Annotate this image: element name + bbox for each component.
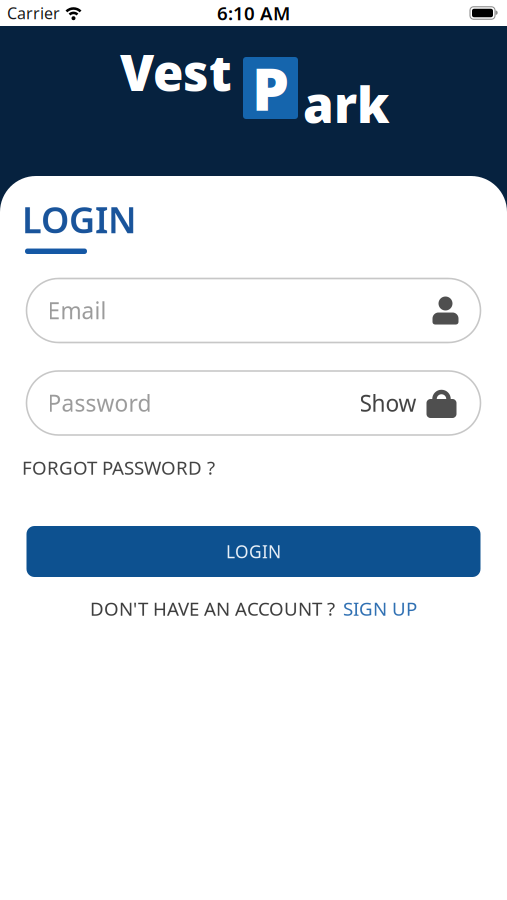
staticText: Password [47,388,151,418]
staticText: LOGIN [226,540,281,563]
staticText: DON'T HAVE AN ACCOUNT ? [90,596,335,621]
staticText: FORGOT PASSWORD ? [22,455,215,480]
button[interactable]: SIGN UP [343,596,417,621]
button[interactable]: LOGIN [26,526,480,577]
button[interactable]: Show password [359,388,456,418]
staticText: P [252,49,289,127]
staticText: Carrier [7,2,60,24]
staticText: LOGIN [22,195,137,243]
staticText: ark [303,71,390,136]
button[interactable]: Email [26,278,480,342]
staticText: 6:10 AM [217,1,290,25]
staticText: Email [47,295,106,325]
staticText: SIGN UP [343,596,417,621]
button[interactable]: Password [26,371,480,435]
button[interactable]: FORGOT PASSWORD ? [22,455,215,480]
staticText: Show [359,388,416,418]
staticText: Vest [120,39,232,104]
